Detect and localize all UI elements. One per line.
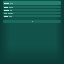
button[interactable]: More bbox=[3, 20, 61, 23]
button[interactable] bbox=[3, 9, 61, 11]
button[interactable] bbox=[3, 15, 61, 17]
button[interactable] bbox=[3, 6, 61, 8]
button[interactable] bbox=[3, 1, 61, 5]
button[interactable] bbox=[3, 12, 61, 14]
